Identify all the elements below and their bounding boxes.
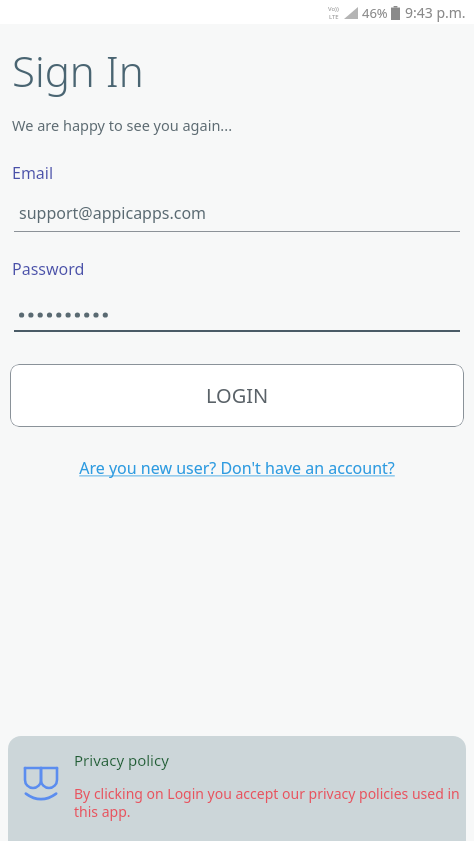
button[interactable]: support@appicapps.com: [14, 202, 460, 232]
button[interactable]: Are you new user? Don't have an account?: [75, 455, 399, 481]
staticText: support@appicapps.com: [19, 202, 207, 224]
button[interactable]: LOGIN: [10, 364, 464, 427]
button[interactable]: Privacy policy: [8, 736, 466, 841]
staticText: 46%: [362, 4, 388, 22]
other: Privacy policy: [18, 761, 64, 807]
staticText: Are you new user? Don't have an account?: [79, 457, 395, 479]
button[interactable]: [14, 306, 460, 332]
staticText: Privacy policy: [74, 750, 169, 770]
staticText: Password: [12, 258, 85, 280]
staticText: LTE: [329, 13, 339, 21]
staticText: Email: [12, 162, 54, 184]
staticText: We are happy to see you again...: [12, 115, 233, 135]
staticText: Vo)): [328, 5, 339, 13]
staticText: By clicking on Login you accept our priv…: [74, 784, 460, 821]
staticText: LOGIN: [206, 382, 269, 409]
staticText: 9:43 p.m.: [405, 3, 466, 22]
staticText: Sign In: [12, 42, 144, 99]
